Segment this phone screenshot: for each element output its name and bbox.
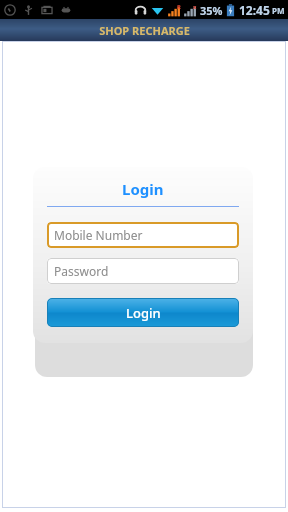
staticText: 35% bbox=[200, 3, 223, 18]
staticText: Login bbox=[126, 304, 161, 322]
staticText: x bbox=[193, 3, 197, 11]
staticText: R bbox=[177, 3, 181, 11]
button[interactable]: Login bbox=[47, 298, 239, 327]
staticText: PM bbox=[272, 5, 285, 16]
staticText: 12:45 bbox=[239, 2, 270, 18]
button[interactable]: Mobile Number bbox=[47, 222, 239, 248]
staticText: SHOP RECHARGE bbox=[99, 23, 190, 38]
button[interactable]: Password bbox=[47, 258, 239, 284]
staticText: Login bbox=[122, 179, 164, 199]
staticText: Mobile Number bbox=[54, 227, 143, 243]
staticText: Password bbox=[54, 263, 109, 279]
